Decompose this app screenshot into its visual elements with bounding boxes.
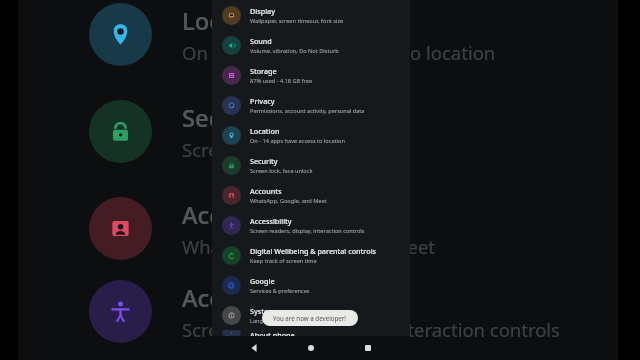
staticText: Screen lock, face unlock — [182, 137, 389, 162]
staticText: Digital Wellbeing & parental controls — [250, 246, 377, 256]
button[interactable]: Security — [212, 150, 410, 180]
button[interactable]: Accounts — [56, 180, 640, 277]
staticText: Services & preferences — [250, 287, 310, 295]
staticText: Languages, gestures, time, backup — [250, 317, 342, 325]
button[interactable]: Accessibility — [212, 210, 410, 240]
staticText: Accessibility — [182, 282, 320, 314]
button[interactable]: Sound — [212, 30, 410, 60]
staticText: On - 14 apps have access to location — [250, 137, 345, 145]
button[interactable]: Back — [239, 336, 269, 360]
staticText: System — [250, 306, 275, 316]
staticText: Privacy — [250, 96, 275, 106]
staticText: Sound — [250, 36, 272, 46]
staticText: Keep track of screen time — [250, 257, 317, 265]
staticText: About phone — [250, 330, 295, 336]
button[interactable]: Location — [212, 120, 410, 150]
button[interactable]: Accessibility — [56, 277, 640, 346]
staticText: Location — [182, 5, 280, 37]
staticText: Accounts — [250, 186, 282, 196]
button[interactable]: Digital Wellbeing & parental controls — [212, 240, 410, 270]
staticText: Accessibility — [250, 216, 292, 226]
staticText: Screen readers, display, interaction con… — [250, 227, 365, 235]
staticText: 87% used - 4.18 GB free — [250, 77, 313, 85]
button[interactable]: Security — [56, 83, 640, 180]
staticText: On - 14 apps have access to location — [182, 40, 496, 65]
staticText: Permissions, account activity, personal … — [250, 107, 365, 115]
button[interactable]: Storage — [212, 60, 410, 90]
staticText: Google — [250, 276, 275, 286]
staticText: Location — [250, 126, 280, 136]
staticText: Wallpaper, screen timeout, font size — [250, 17, 344, 25]
button[interactable]: Location — [56, 0, 640, 83]
button[interactable]: System — [212, 300, 410, 330]
staticText: Security — [182, 102, 274, 134]
staticText: Screen lock, face unlock — [250, 167, 313, 175]
staticText: You are now a developer! — [273, 314, 347, 322]
button[interactable]: Accounts — [212, 180, 410, 210]
button[interactable]: About phone — [212, 330, 410, 336]
staticText: Volume, vibration, Do Not Disturb — [250, 47, 339, 55]
staticText: Accounts — [182, 199, 286, 231]
button[interactable]: Recents — [353, 336, 383, 360]
staticText: WhatsApp, Google, and Meet — [250, 197, 327, 205]
button[interactable]: Google — [212, 270, 410, 300]
button[interactable]: Home — [296, 336, 326, 360]
button[interactable]: Privacy — [212, 90, 410, 120]
staticText: Security — [250, 156, 278, 166]
staticText: Screen readers, display, interaction con… — [182, 317, 560, 342]
staticText: Display — [250, 6, 275, 16]
staticText: Storage — [250, 66, 277, 76]
staticText: WhatsApp, Google, and Meet — [182, 234, 436, 259]
button[interactable]: Display — [212, 0, 410, 30]
